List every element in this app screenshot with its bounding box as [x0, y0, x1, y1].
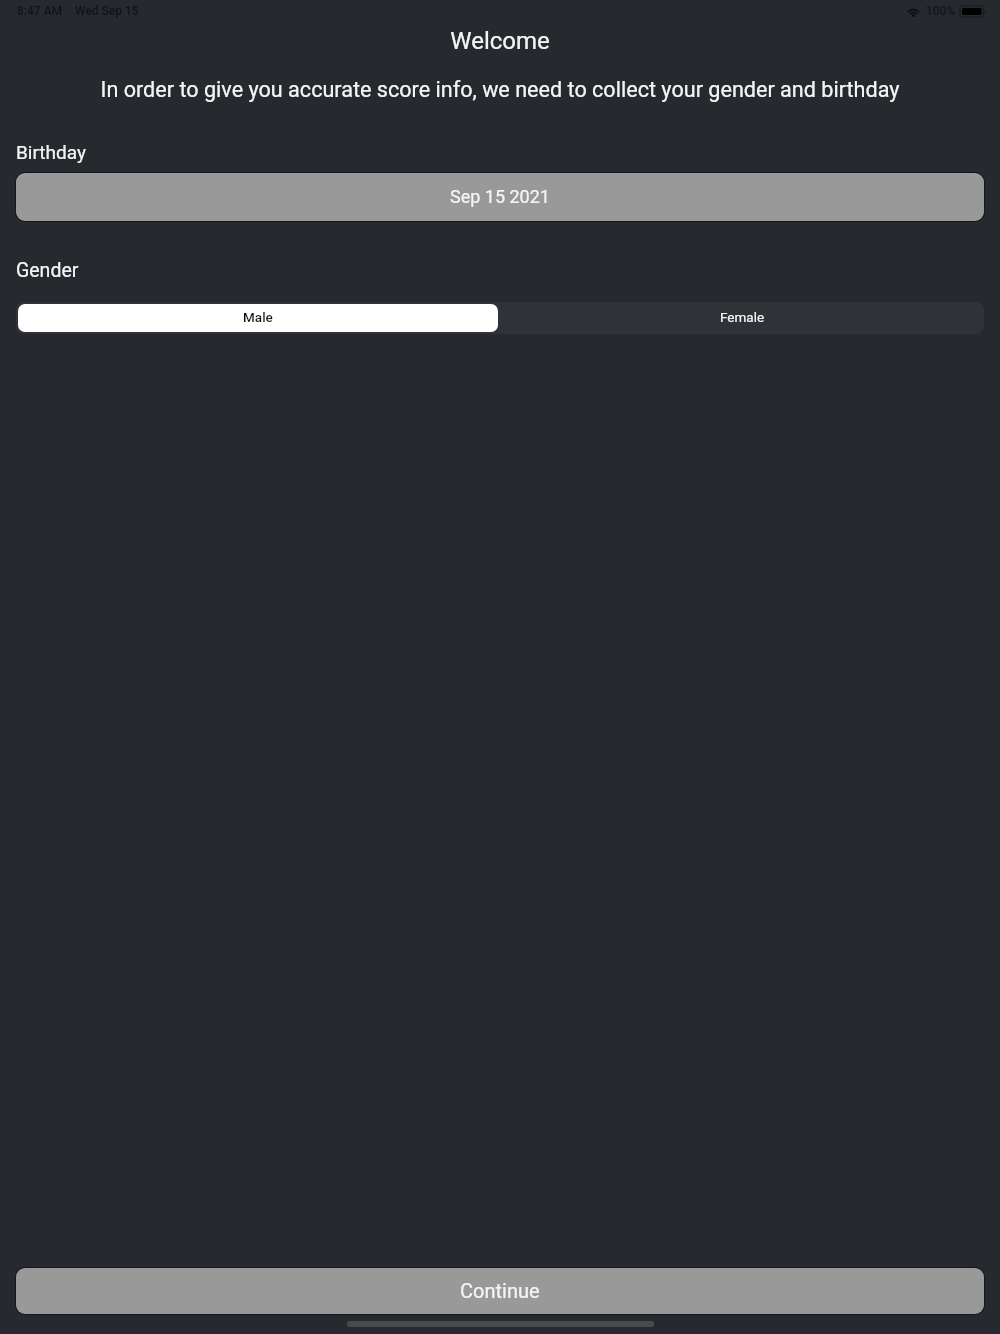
staticText: Continue [460, 1279, 540, 1302]
staticText: Gender [16, 259, 79, 282]
staticText: Male [243, 309, 273, 325]
staticText: Sep 15 2021 [450, 186, 550, 207]
staticText: 8:47 AM [17, 4, 63, 18]
button[interactable]: Continue [16, 1268, 984, 1314]
staticText: 100% [926, 4, 956, 18]
staticText: Wed Sep 15 [75, 4, 139, 18]
staticText: Welcome [0, 27, 1000, 55]
button[interactable]: Female [500, 302, 984, 334]
button[interactable]: Male [18, 304, 498, 332]
staticText: Female [720, 309, 765, 325]
other: Battery full [960, 6, 985, 17]
staticText: In order to give you accurate score info… [0, 77, 1000, 102]
staticText: Birthday [16, 141, 86, 163]
other: Wi-Fi [906, 6, 921, 17]
button[interactable]: Sep 15 2021 [16, 173, 984, 221]
